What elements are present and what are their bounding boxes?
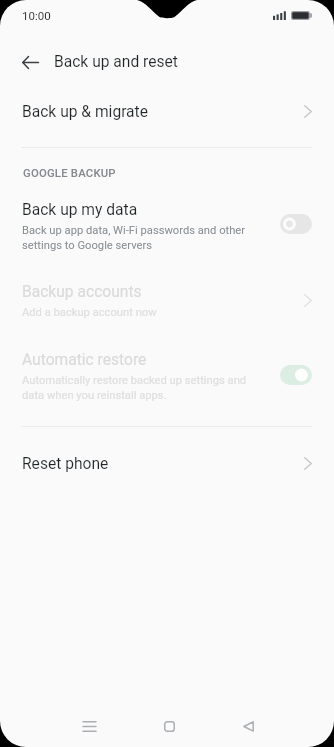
staticText: Automatically restore backed up settings…: [22, 372, 247, 402]
button[interactable]: Home: [147, 704, 191, 747]
button[interactable]: Reset phone: [0, 440, 334, 488]
staticText: Back up and reset: [54, 53, 178, 71]
staticText: Back up app data, Wi-Fi passwords and ot…: [22, 222, 246, 252]
button[interactable]: Back: [226, 704, 270, 747]
staticText: GOOGLE BACKUP: [23, 167, 116, 180]
button[interactable]: Back up & migrate: [0, 88, 334, 136]
button[interactable]: Backup accounts: [0, 279, 334, 323]
button[interactable]: Recent apps: [67, 704, 111, 747]
staticText: Backup accounts: [22, 283, 142, 301]
button[interactable]: Automatic restore: [0, 348, 334, 405]
button[interactable]: Back up my data: [0, 198, 334, 255]
staticText: 10:00: [22, 9, 51, 22]
staticText: Automatic restore: [22, 351, 147, 369]
staticText: Reset phone: [22, 455, 304, 473]
staticText: Add a backup account now: [22, 304, 157, 319]
button[interactable]: Back: [8, 40, 52, 84]
staticText: Back up & migrate: [22, 103, 304, 121]
staticText: Back up my data: [22, 201, 138, 219]
